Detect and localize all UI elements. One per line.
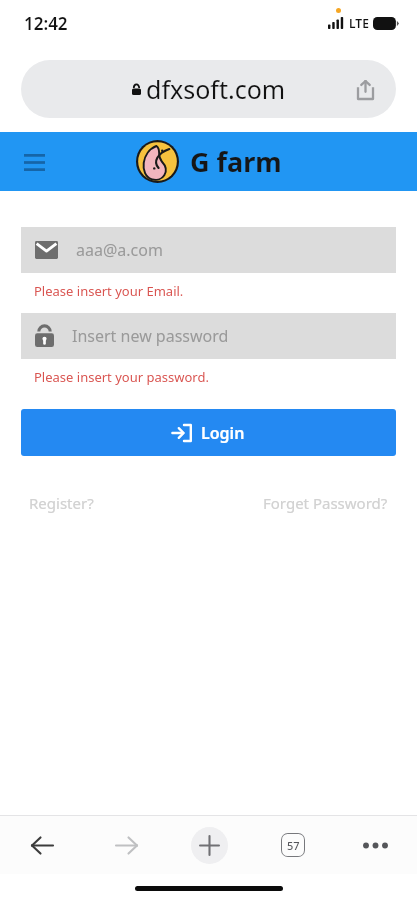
button[interactable]: Login — [21, 409, 396, 456]
button[interactable]: Forward — [84, 816, 168, 874]
staticText: LTE — [349, 15, 369, 31]
staticText: Forget Password? — [263, 493, 388, 513]
staticText: dfxsoft.com — [146, 72, 286, 106]
staticText: Login — [201, 422, 245, 444]
button[interactable]: Share — [348, 72, 382, 106]
staticText: Register? — [29, 493, 94, 513]
button[interactable]: Forget Password? — [255, 490, 396, 516]
staticText: Insert new password — [72, 325, 229, 347]
staticText: 57 — [287, 838, 300, 853]
button[interactable]: Register? — [21, 490, 102, 516]
button[interactable]: New tab — [191, 827, 228, 864]
staticText: 12:42 — [24, 12, 68, 35]
button[interactable]: aaa@a.com — [21, 227, 396, 273]
button[interactable]: Tabs — [281, 833, 305, 857]
button[interactable]: dfxsoft.com — [21, 60, 396, 118]
button[interactable]: More — [334, 816, 417, 874]
staticText: aaa@a.com — [76, 239, 163, 261]
button[interactable]: Menu — [16, 144, 52, 180]
staticText: Please insert your Email. — [34, 282, 184, 300]
button[interactable]: Insert new password — [21, 313, 396, 359]
staticText: Please insert your password. — [34, 368, 209, 386]
staticText: G farm — [190, 143, 282, 180]
button[interactable]: Back — [0, 816, 84, 874]
